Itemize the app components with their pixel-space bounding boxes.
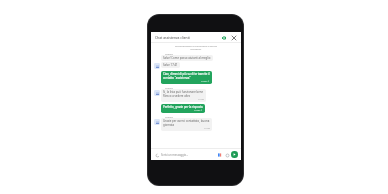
- staticText: Cliente: [165, 86, 173, 89]
- staticText: Si, la lista può funzionare bene: [163, 90, 204, 94]
- button[interactable]: Emoji: [224, 152, 230, 158]
- button[interactable]: Grazie per averci contattato, buona: [154, 118, 238, 131]
- staticText: Ciao, dimmi di più su di te tramite il: [163, 72, 210, 76]
- button[interactable]: Ciao, dimmi di più su di te tramite il: [154, 71, 238, 84]
- staticText: Chat assistenza clienti: [155, 35, 190, 39]
- button[interactable]: Perfetto, grazie per la risposta: [154, 104, 238, 113]
- button[interactable]: Allega file: [154, 152, 160, 158]
- staticText: contatto "assistenza": [163, 76, 191, 80]
- staticText: Perfetto, grazie per la risposta: [163, 105, 203, 109]
- staticText: automatizzata e rispondere a prima: [154, 44, 238, 47]
- staticText: Salve! Come posso aiutarti al meglio: [163, 56, 211, 60]
- staticText: Salve 17:41: [163, 63, 178, 67]
- staticText: Cliente: [165, 115, 173, 118]
- staticText: 17:41 ✓: [201, 80, 210, 83]
- button[interactable]: Salve! Come posso aiutarti al meglio: [154, 55, 238, 61]
- staticText: 17:43: [204, 127, 210, 130]
- button[interactable]: Tastiera: [217, 152, 223, 158]
- button[interactable]: Si, la lista può funzionare bene: [154, 89, 238, 102]
- staticText: Grazie per averci contattato, buona: [163, 119, 210, 123]
- button[interactable]: Chiudi: [230, 34, 237, 41]
- staticText: giornata: [163, 123, 175, 127]
- staticText: Scrivi un messaggio...: [161, 153, 217, 157]
- button[interactable]: Invia messaggio: [231, 151, 238, 158]
- staticText: 17:42: [198, 98, 204, 101]
- staticText: possibile.: [154, 47, 238, 50]
- staticText: 17:42 ✓: [194, 109, 203, 112]
- button[interactable]: Salve 17:41: [154, 62, 238, 69]
- button[interactable]: Impostazioni chat: [220, 34, 227, 41]
- staticText: Cliente: [165, 52, 173, 55]
- staticText: Riesco a vedere altro: [163, 94, 191, 98]
